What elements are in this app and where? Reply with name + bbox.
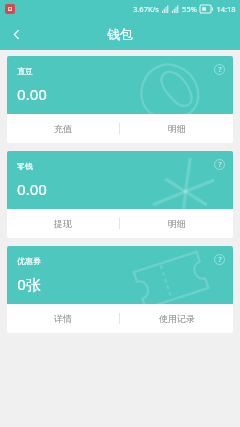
button[interactable]: 使用记录 — [120, 304, 233, 333]
button[interactable]: 提现 — [7, 209, 119, 238]
staticText: 14:18 — [216, 4, 236, 14]
staticText: 明细 — [168, 123, 186, 134]
button[interactable]: 明细 — [120, 114, 233, 143]
button[interactable]: Back — [0, 18, 32, 50]
staticText: 优惠券 — [17, 256, 41, 266]
button[interactable]: 充值 — [7, 114, 119, 143]
button[interactable]: Help — [212, 252, 227, 267]
staticText: ? — [218, 65, 222, 75]
staticText: 3.67K/s — [133, 4, 159, 14]
staticText: 零钱 — [17, 161, 33, 171]
staticText: 详情 — [54, 313, 72, 324]
staticText: ? — [218, 160, 222, 170]
staticText: 提现 — [54, 218, 72, 229]
button[interactable]: 详情 — [7, 304, 119, 333]
staticText: 0.00 — [17, 84, 47, 104]
staticText: 明细 — [168, 218, 186, 229]
button[interactable]: Help — [212, 157, 227, 172]
staticText: 充值 — [54, 123, 72, 134]
staticText: 钱包 — [107, 26, 133, 42]
button[interactable]: Help — [212, 62, 227, 77]
staticText: ? — [218, 255, 222, 265]
staticText: 直豆 — [17, 66, 33, 76]
staticText: 使用记录 — [159, 313, 195, 324]
staticText: 0.00 — [17, 179, 47, 199]
staticText: 0张 — [17, 274, 41, 294]
staticText: 55% — [182, 4, 197, 14]
button[interactable]: 明细 — [120, 209, 233, 238]
